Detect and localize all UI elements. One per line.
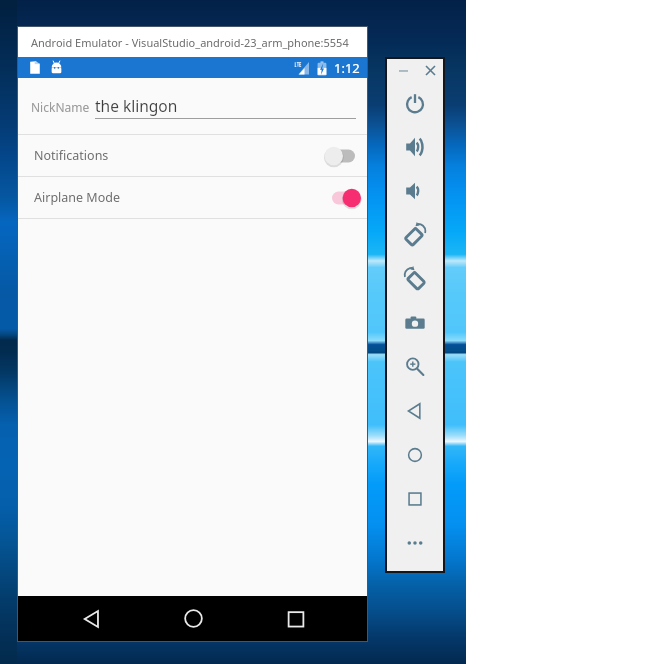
button[interactable]: Rotate left [387,213,443,257]
button[interactable]: Home [152,596,234,641]
staticText: Notifications [34,147,109,164]
staticText: 1:12 [334,59,360,77]
button[interactable]: More [387,521,443,565]
button[interactable]: Volume up [387,125,443,169]
button[interactable]: Notifications [18,135,367,176]
button[interactable]: Zoom [387,345,443,389]
button[interactable]: Close [422,62,438,78]
button[interactable]: Rotate right [387,257,443,301]
button[interactable]: Airplane Mode [18,177,367,218]
button[interactable]: Minimize [395,62,411,78]
staticText: Airplane Mode [34,189,120,206]
button[interactable]: Back [387,389,443,433]
button[interactable]: Back [50,596,132,641]
button[interactable]: Power [387,81,443,125]
button[interactable]: Overview [387,477,443,521]
button[interactable]: Take screenshot [387,301,443,345]
staticText: Android Emulator - VisualStudio_android-… [31,35,349,50]
button[interactable]: Recent apps [255,596,337,641]
button[interactable]: Home [387,433,443,477]
staticText: NickName [31,99,90,115]
staticText: the klingon [95,95,178,116]
button[interactable]: Volume down [387,169,443,213]
